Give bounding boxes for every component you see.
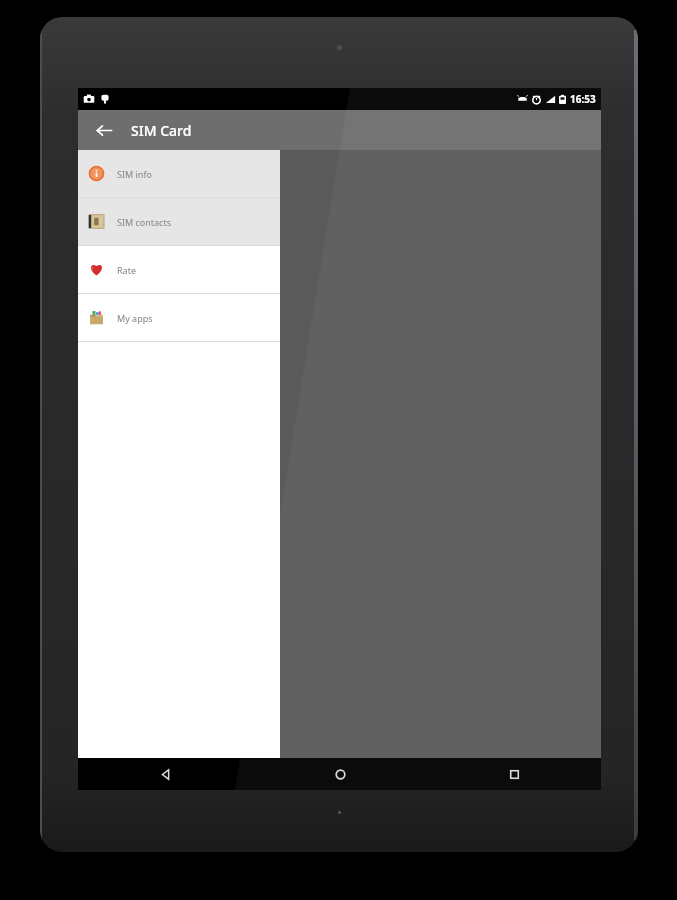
button[interactable]: Back bbox=[78, 758, 253, 790]
button[interactable]: Home bbox=[253, 758, 427, 790]
staticText: 16:53 bbox=[570, 92, 596, 106]
button[interactable]: Rate bbox=[78, 246, 280, 293]
staticText: SIM info bbox=[117, 168, 152, 180]
button[interactable]: My apps bbox=[78, 294, 280, 341]
staticText: My apps bbox=[117, 312, 153, 324]
button[interactable]: Recent apps bbox=[427, 758, 601, 790]
staticText: Rate bbox=[117, 264, 136, 276]
staticText: SIM contacts bbox=[117, 216, 172, 228]
staticText: SIM Card bbox=[131, 121, 192, 140]
button[interactable]: SIM contacts bbox=[78, 198, 280, 245]
button[interactable]: SIM info bbox=[78, 150, 280, 197]
button[interactable]: Navigate up bbox=[88, 114, 120, 146]
